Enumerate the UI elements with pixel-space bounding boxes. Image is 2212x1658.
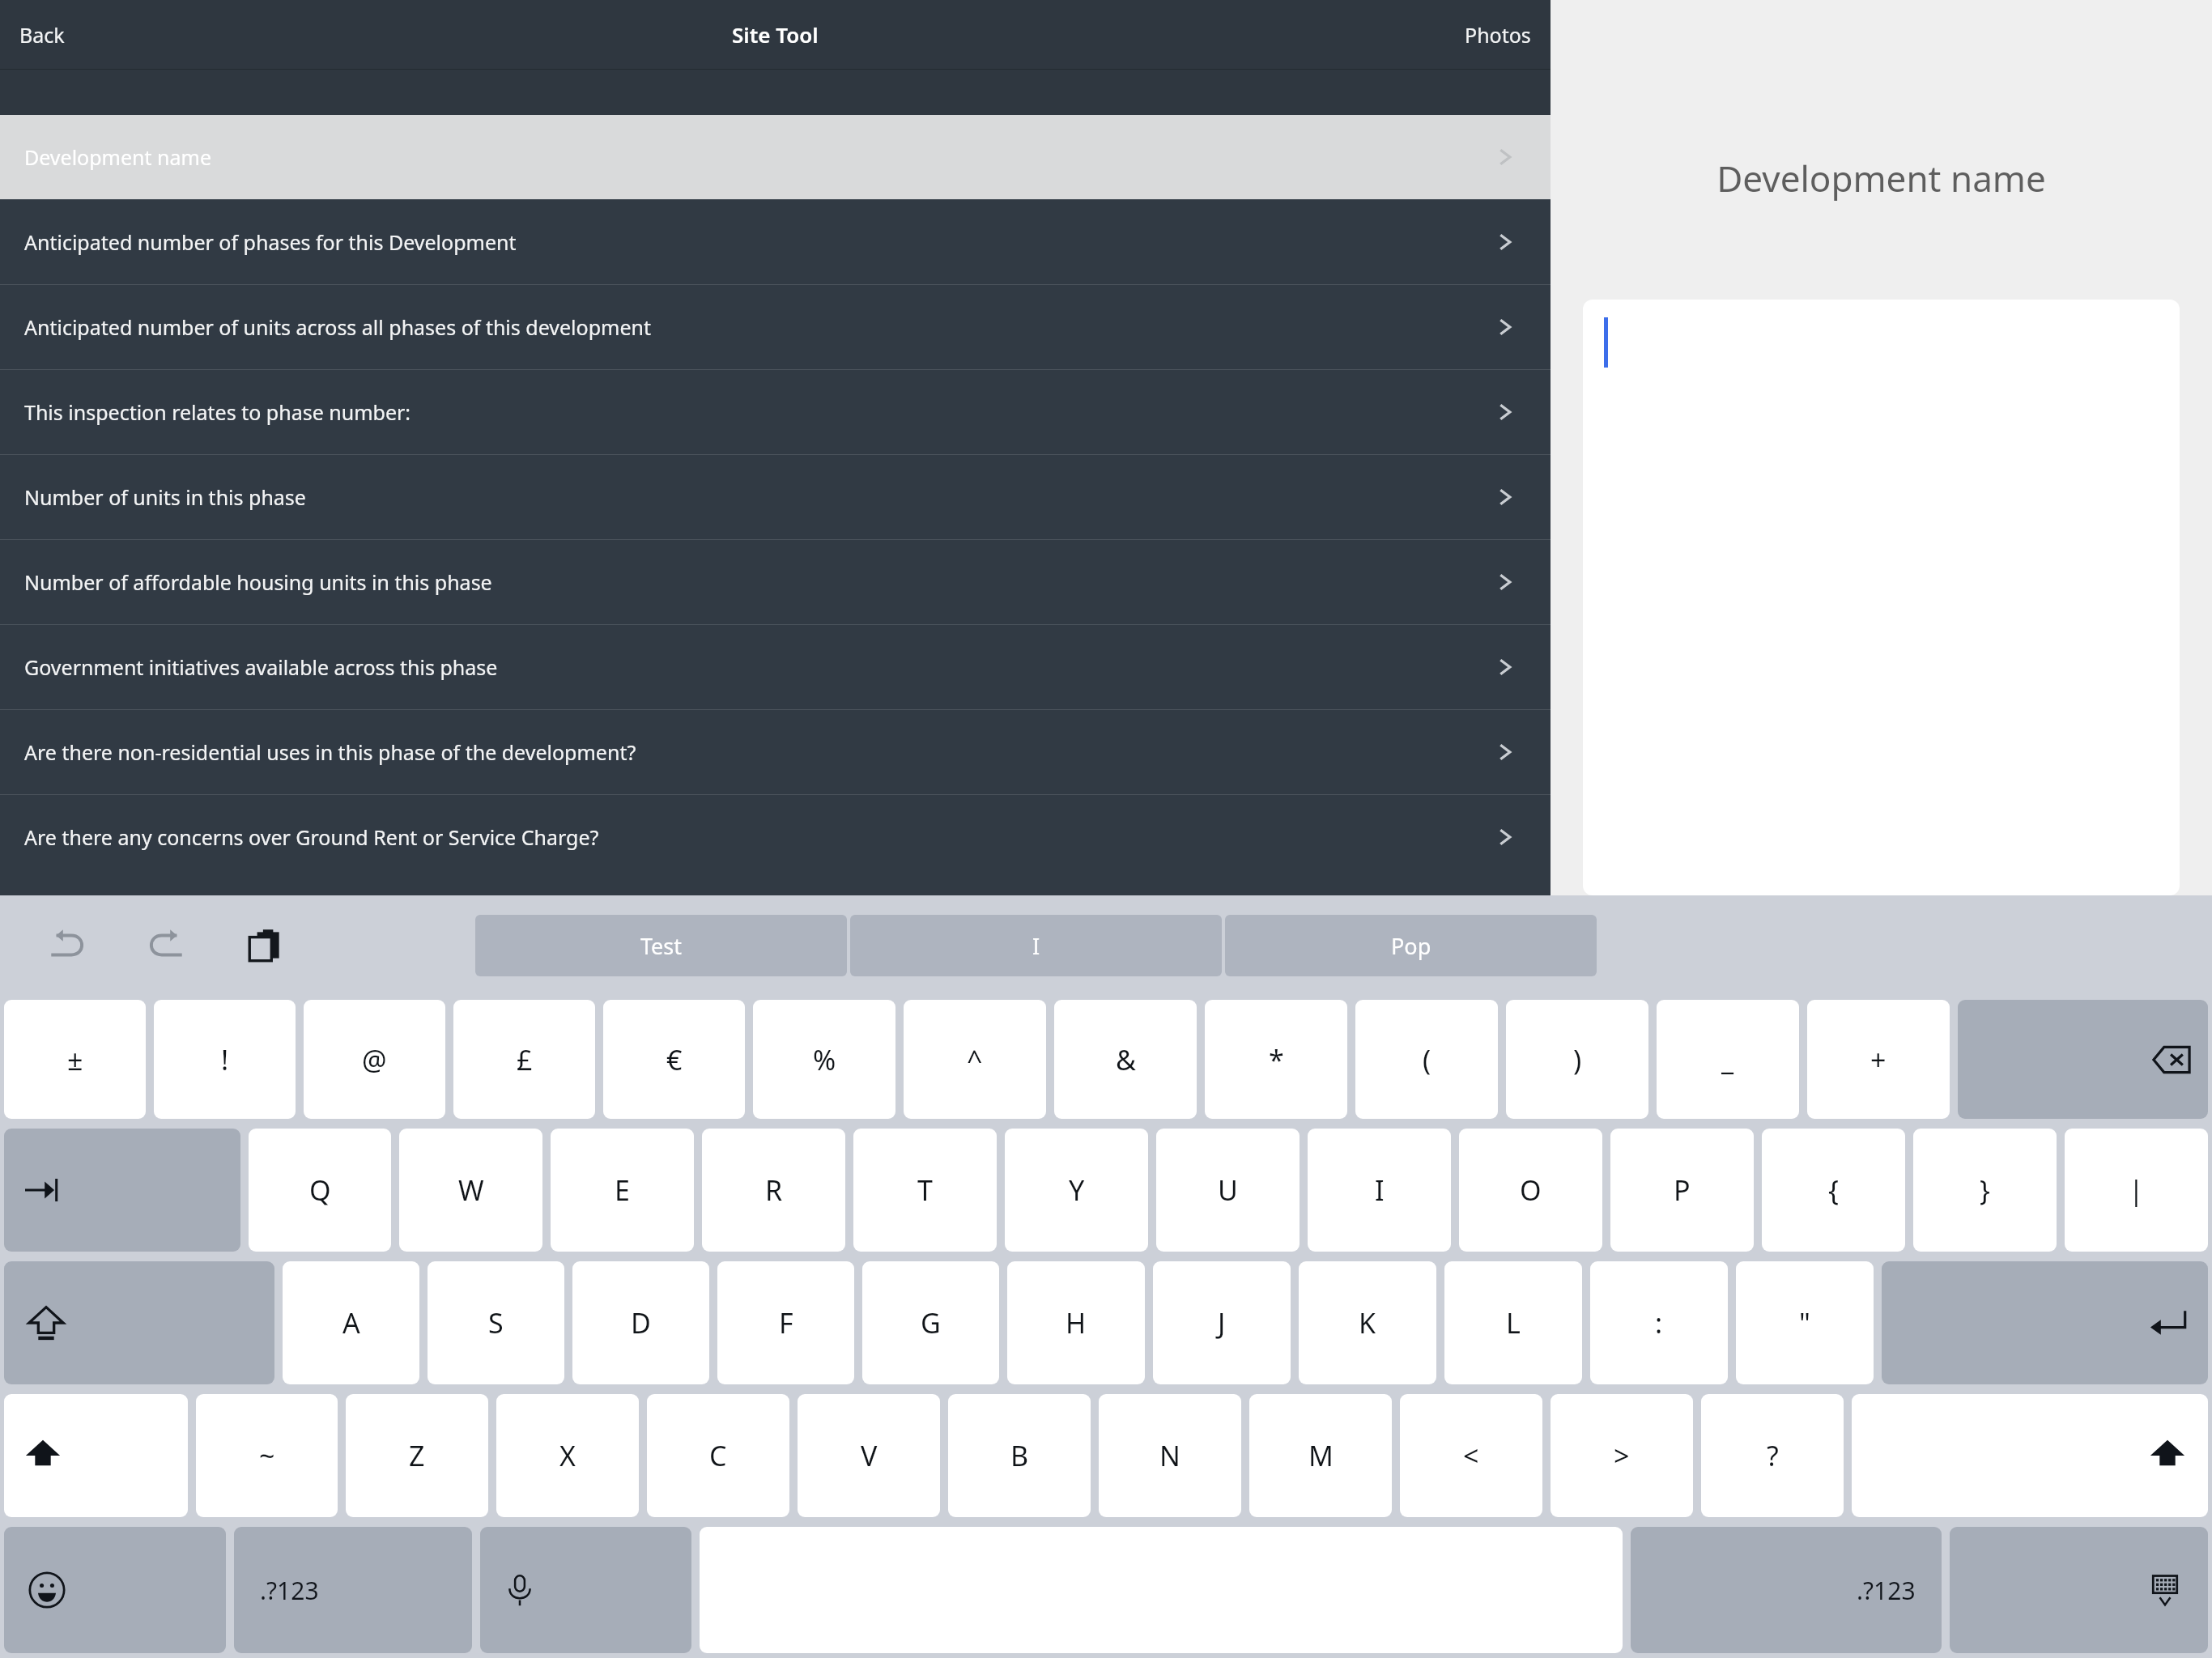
button[interactable]: Pop	[1225, 915, 1597, 976]
button[interactable]: I	[1308, 1129, 1451, 1252]
button[interactable]: Q	[249, 1129, 391, 1252]
button[interactable]: M	[1249, 1394, 1392, 1517]
button[interactable]: K	[1299, 1261, 1436, 1384]
button[interactable]: @	[304, 1000, 445, 1119]
staticText: Government initiatives available across …	[24, 653, 1494, 681]
button[interactable]: )	[1506, 1000, 1648, 1119]
button[interactable]: Z	[346, 1394, 488, 1517]
button[interactable]: B	[948, 1394, 1091, 1517]
button[interactable]: Shift	[1852, 1394, 2208, 1517]
button[interactable]: Anticipated number of phases for this De…	[0, 200, 1551, 284]
button[interactable]: X	[496, 1394, 639, 1517]
button[interactable]: |	[2065, 1129, 2208, 1252]
button[interactable]: Photos	[1457, 16, 1539, 53]
button[interactable]: P	[1610, 1129, 1754, 1252]
button[interactable]: Undo	[37, 916, 96, 975]
staticText: M	[1308, 1437, 1334, 1474]
button[interactable]: %	[753, 1000, 895, 1119]
staticText: ±	[67, 1041, 83, 1078]
button[interactable]: Development name	[0, 115, 1551, 199]
button[interactable]: A	[283, 1261, 419, 1384]
button[interactable]	[1583, 300, 2180, 895]
staticText: ~	[259, 1437, 275, 1474]
button[interactable]: Are there non-residential uses in this p…	[0, 710, 1551, 794]
staticText: Number of affordable housing units in th…	[24, 568, 1494, 596]
button[interactable]: ^	[904, 1000, 1046, 1119]
button[interactable]: S	[428, 1261, 564, 1384]
button[interactable]: {	[1762, 1129, 1905, 1252]
button[interactable]: R	[702, 1129, 845, 1252]
button[interactable]: Test	[475, 915, 847, 976]
button[interactable]: ?	[1701, 1394, 1844, 1517]
other: Return	[2150, 1304, 2187, 1341]
button[interactable]: G	[862, 1261, 999, 1384]
button[interactable]: I	[850, 915, 1222, 976]
button[interactable]: U	[1156, 1129, 1300, 1252]
other: Dictate	[503, 1573, 537, 1607]
staticText: Test	[640, 931, 683, 961]
button[interactable]: ~	[196, 1394, 338, 1517]
staticText: .?123	[1857, 1574, 1916, 1607]
button[interactable]: L	[1444, 1261, 1582, 1384]
button[interactable]: _	[1657, 1000, 1799, 1119]
staticText: Y	[1069, 1171, 1085, 1209]
button[interactable]: Y	[1005, 1129, 1148, 1252]
button[interactable]: Shift	[4, 1261, 274, 1384]
button[interactable]: <	[1400, 1394, 1542, 1517]
button[interactable]: T	[853, 1129, 997, 1252]
staticText: G	[921, 1304, 941, 1341]
staticText: F	[779, 1304, 793, 1341]
button[interactable]: V	[798, 1394, 940, 1517]
button[interactable]: .?123	[1631, 1527, 1942, 1653]
button[interactable]: Anticipated number of units across all p…	[0, 285, 1551, 369]
button[interactable]: Redo	[138, 916, 196, 975]
button[interactable]: Government initiatives available across …	[0, 625, 1551, 709]
button[interactable]: N	[1099, 1394, 1241, 1517]
button[interactable]: Shift	[4, 1394, 188, 1517]
button[interactable]: Return	[1882, 1261, 2208, 1384]
button[interactable]: E	[551, 1129, 694, 1252]
button[interactable]: "	[1736, 1261, 1874, 1384]
button[interactable]: W	[399, 1129, 542, 1252]
button[interactable]: £	[453, 1000, 595, 1119]
button[interactable]: F	[717, 1261, 854, 1384]
button[interactable]: C	[647, 1394, 789, 1517]
button[interactable]: +	[1807, 1000, 1950, 1119]
button[interactable]: >	[1551, 1394, 1693, 1517]
button[interactable]: This inspection relates to phase number:	[0, 370, 1551, 454]
button[interactable]: Hide keyboard	[1950, 1527, 2208, 1653]
button[interactable]: J	[1153, 1261, 1291, 1384]
button[interactable]: }	[1913, 1129, 2057, 1252]
button[interactable]: &	[1054, 1000, 1197, 1119]
other: Shift	[28, 1305, 64, 1341]
staticText: L	[1506, 1304, 1521, 1341]
button[interactable]: O	[1459, 1129, 1602, 1252]
button[interactable]: Are there any concerns over Ground Rent …	[0, 795, 1551, 879]
button[interactable]: .?123	[234, 1527, 472, 1653]
button[interactable]: Back	[11, 16, 73, 53]
button[interactable]: Dictate	[480, 1527, 691, 1653]
button[interactable]: *	[1205, 1000, 1347, 1119]
button[interactable]: !	[154, 1000, 296, 1119]
button[interactable]: Tab	[4, 1129, 240, 1252]
button[interactable]: Number of affordable housing units in th…	[0, 540, 1551, 624]
button[interactable]: ±	[4, 1000, 146, 1119]
button[interactable]: :	[1590, 1261, 1728, 1384]
staticText: {	[1828, 1171, 1839, 1209]
button[interactable]: Paste	[236, 916, 295, 975]
staticText: <	[1463, 1437, 1479, 1474]
button[interactable]: Emoji	[4, 1527, 226, 1653]
staticText: E	[615, 1171, 630, 1209]
button[interactable]: Backspace	[1958, 1000, 2208, 1119]
button[interactable]: H	[1007, 1261, 1145, 1384]
staticText: Q	[309, 1171, 331, 1209]
button[interactable]: Number of units in this phase	[0, 455, 1551, 539]
staticText: }	[1980, 1171, 1990, 1209]
staticText: Number of units in this phase	[24, 483, 1494, 511]
staticText: V	[861, 1437, 878, 1474]
staticText: :	[1655, 1304, 1663, 1341]
button[interactable]: (	[1355, 1000, 1498, 1119]
button[interactable]: D	[572, 1261, 709, 1384]
button[interactable]: €	[603, 1000, 745, 1119]
